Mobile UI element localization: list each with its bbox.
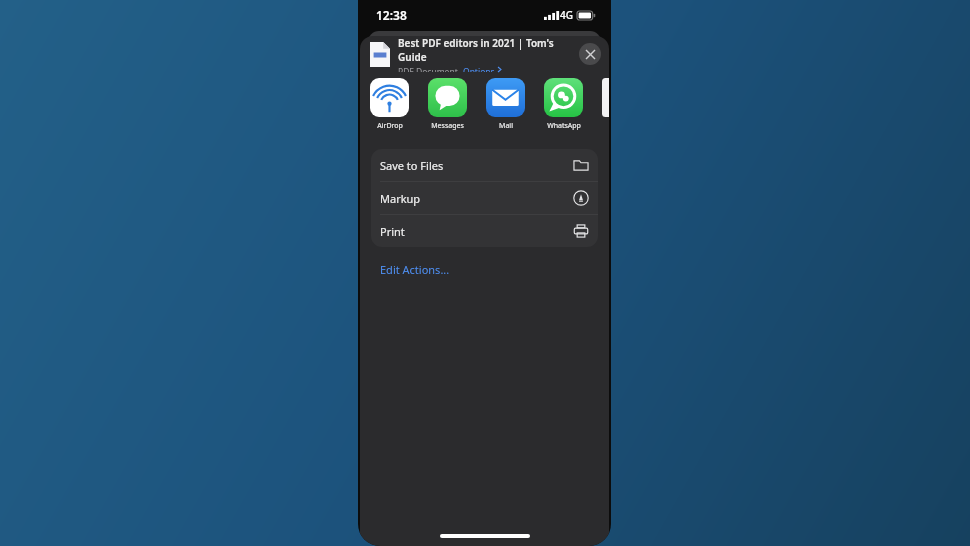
staticText: Print [380,224,573,239]
button[interactable]: Save to Files [371,149,598,181]
staticText: WhatsApp [547,121,581,131]
button[interactable]: AirDrop [370,78,409,131]
staticText: Markup [380,191,573,206]
button[interactable]: Options [463,66,502,72]
staticText: 4G [560,8,573,22]
staticText: PDF Document [398,66,458,72]
button[interactable]: Mail [486,78,525,131]
button[interactable]: Edit Actions... [371,256,598,282]
staticText: Mail [499,121,513,131]
staticText: Best PDF editors in 2021 | Tom's Guide [398,36,573,64]
staticText: Messages [431,121,464,131]
button[interactable]: WhatsApp [544,78,583,131]
button[interactable]: Close [579,43,601,65]
button[interactable]: More apps [602,78,609,117]
staticText: Edit Actions... [380,262,450,277]
staticText: Options [463,66,495,72]
staticText: Save to Files [380,158,573,173]
staticText: 12:38 [376,7,407,23]
button[interactable]: Print [371,215,598,247]
button[interactable]: Messages [428,78,467,131]
staticText: AirDrop [377,121,403,131]
button[interactable]: Markup [371,182,598,214]
